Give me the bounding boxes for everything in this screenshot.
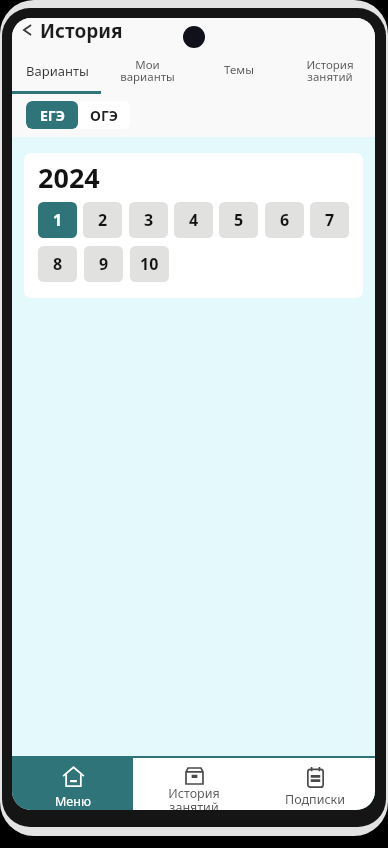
button[interactable]: 10 <box>130 246 169 282</box>
staticText: Мои варианты <box>120 57 175 84</box>
button[interactable]: Темы <box>193 48 284 94</box>
staticText: Подписки <box>285 791 345 808</box>
staticText: Меню <box>55 793 91 810</box>
staticText: 1 <box>53 209 63 231</box>
button[interactable]: Back <box>15 18 39 42</box>
staticText: 2024 <box>38 159 100 196</box>
button[interactable]: История занятий <box>284 48 375 94</box>
staticText: 10 <box>140 253 159 275</box>
button[interactable]: Мои варианты <box>102 48 193 94</box>
button[interactable]: Меню <box>12 756 133 810</box>
button[interactable]: 5 <box>219 202 258 238</box>
button[interactable]: 1 <box>38 202 77 238</box>
staticText: 2 <box>98 209 108 231</box>
staticText: История занятий <box>306 57 354 84</box>
staticText: 4 <box>189 209 199 231</box>
staticText: 9 <box>99 253 109 275</box>
button[interactable]: Подписки <box>254 758 375 810</box>
button[interactable]: История занятий <box>133 758 254 810</box>
button[interactable]: 6 <box>265 202 304 238</box>
staticText: 5 <box>234 209 244 231</box>
staticText: 7 <box>325 209 335 231</box>
staticText: 8 <box>53 253 63 275</box>
staticText: История занятий <box>168 785 220 810</box>
button[interactable]: 4 <box>174 202 213 238</box>
staticText: ЕГЭ <box>40 106 65 125</box>
staticText: 3 <box>144 209 154 231</box>
staticText: 6 <box>280 209 290 231</box>
staticText: ОГЭ <box>90 106 118 125</box>
button[interactable]: 8 <box>38 246 77 282</box>
staticText: Темы <box>224 62 254 78</box>
staticText: История <box>40 18 123 44</box>
button[interactable]: Варианты <box>12 48 102 94</box>
button[interactable]: 9 <box>84 246 123 282</box>
button[interactable]: 3 <box>129 202 168 238</box>
staticText: Варианты <box>26 62 89 80</box>
button[interactable]: ЕГЭ <box>26 101 78 129</box>
button[interactable]: 2 <box>83 202 122 238</box>
button[interactable]: 7 <box>310 202 349 238</box>
button[interactable]: ОГЭ <box>78 101 130 129</box>
